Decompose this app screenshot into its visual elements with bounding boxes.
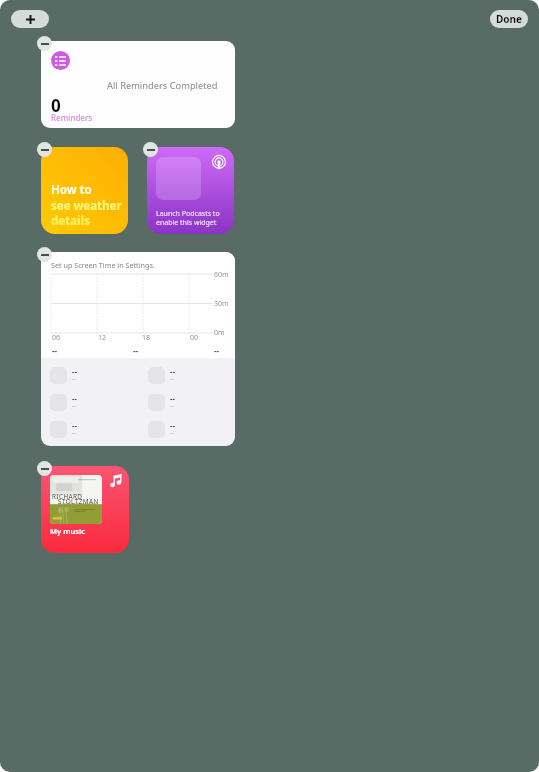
staticText: -- xyxy=(214,345,220,356)
button[interactable]: Remove widget xyxy=(37,461,52,476)
staticText: -- xyxy=(72,420,77,430)
staticText: -- xyxy=(170,393,175,403)
staticText: -- xyxy=(170,366,175,376)
button[interactable]: How to xyxy=(41,147,128,234)
staticText: Reminders xyxy=(51,112,93,123)
staticText: -- xyxy=(133,345,139,356)
staticText: 60m xyxy=(214,270,229,280)
staticText: 0 xyxy=(51,94,61,117)
staticText: STOLTZMAN xyxy=(58,497,99,506)
staticText: 12 xyxy=(98,333,107,343)
button[interactable]: Remove widget xyxy=(37,142,52,157)
staticText: 30m xyxy=(214,299,229,309)
staticText: enable this widget xyxy=(156,218,217,228)
button[interactable]: RICHARD xyxy=(41,466,129,553)
button[interactable]: Add widget xyxy=(11,10,49,28)
staticText: 06 xyxy=(52,333,61,343)
staticText: All Reminders Completed xyxy=(107,79,218,92)
staticText: RICHARD xyxy=(52,492,83,501)
button[interactable]: Set up Screen Time in Settings. xyxy=(41,252,235,446)
button[interactable]: Remove widget xyxy=(143,142,158,157)
staticText: -- xyxy=(72,428,77,438)
staticText: How to xyxy=(51,182,92,198)
staticText: Set up Screen Time in Settings. xyxy=(51,260,155,270)
staticText: -- xyxy=(72,374,77,384)
staticText: 0m xyxy=(214,328,225,338)
staticText: -- xyxy=(170,428,175,438)
button[interactable]: Remove widget xyxy=(37,247,52,262)
staticText: Launch Podcasts to xyxy=(156,209,220,219)
staticText: 18 xyxy=(142,333,151,343)
staticText: -- xyxy=(72,393,77,403)
staticText: -- xyxy=(170,420,175,430)
staticText: -- xyxy=(170,401,175,411)
staticText: see weather xyxy=(51,198,122,214)
button[interactable]: Remove widget xyxy=(37,36,52,51)
staticText: My music xyxy=(50,526,86,536)
staticText: 00 xyxy=(190,333,199,343)
staticText: -- xyxy=(72,366,77,376)
staticText: -- xyxy=(52,345,58,356)
button[interactable]: Launch Podcasts to xyxy=(147,147,234,234)
staticText: Done xyxy=(496,12,523,26)
staticText: -- xyxy=(170,374,175,384)
staticText: details xyxy=(51,213,90,229)
staticText: -- xyxy=(72,401,77,411)
staticText: MUSIC IN MY PLAYER MODE xyxy=(58,503,97,507)
button[interactable]: All Reminders Completed xyxy=(41,41,235,128)
button[interactable]: Done xyxy=(490,10,528,28)
